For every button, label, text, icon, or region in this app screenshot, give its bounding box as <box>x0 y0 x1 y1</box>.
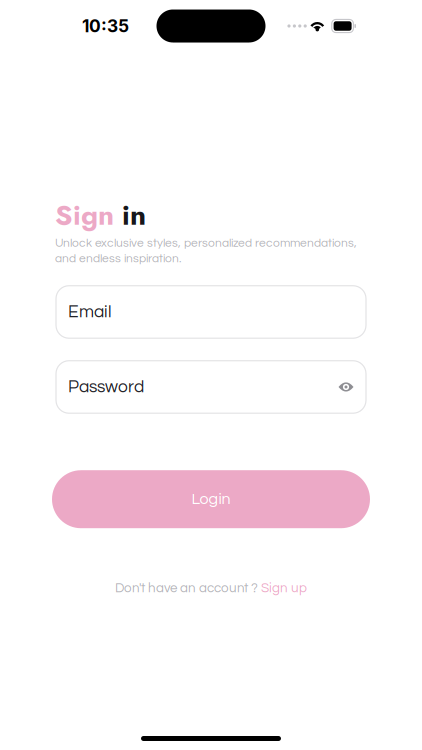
staticText: Sign up <box>261 581 307 595</box>
staticText: Unlock exclusive styles, personalized re… <box>55 237 357 249</box>
staticText: Email <box>68 303 112 321</box>
staticText: Don't have an account ? <box>115 581 261 595</box>
staticText: and endless inspiration. <box>55 252 181 265</box>
staticText: Password <box>68 378 144 396</box>
button[interactable]: Password <box>56 361 366 413</box>
staticText: Login <box>191 491 230 507</box>
staticText: in <box>114 195 146 235</box>
button[interactable]: Login <box>52 470 370 528</box>
button[interactable]: Email <box>56 286 366 338</box>
staticText: 10:35 <box>82 15 129 36</box>
staticText: Sign <box>55 195 114 235</box>
button[interactable]: Don't have an account ? <box>115 581 307 595</box>
